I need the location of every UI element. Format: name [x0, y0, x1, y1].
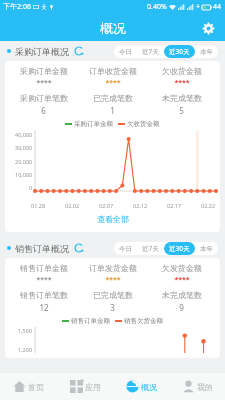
staticText: 近30天 — [169, 244, 190, 253]
staticText: 应用 — [85, 382, 101, 392]
staticText: 订单发货金额 — [89, 263, 137, 273]
button[interactable]: 近7天 — [137, 242, 164, 255]
staticText: 采购订单金额 — [20, 66, 68, 76]
staticText: 0 — [29, 184, 33, 191]
staticText: 我的 — [197, 382, 213, 392]
button[interactable]: 设置 — [198, 18, 218, 38]
staticText: 9 — [179, 302, 184, 313]
staticText: 今日 — [119, 48, 132, 56]
staticText: 1,500 — [18, 327, 33, 334]
staticText: 1,200 — [18, 346, 33, 353]
staticText: **** — [174, 275, 190, 285]
button[interactable]: 销售订单金额 — [5, 258, 220, 358]
staticText: 未完成笔数 — [162, 290, 202, 300]
staticText: 销售订单笔数 — [20, 290, 68, 300]
staticText: **** — [105, 275, 121, 285]
staticText: 6 — [41, 105, 46, 116]
staticText: 欠收货金额 — [162, 66, 202, 76]
staticText: **** — [174, 78, 190, 88]
staticText: 02.07 — [99, 202, 114, 209]
button[interactable]: 查看全部 — [5, 211, 220, 227]
staticText: 销售订单金额 — [20, 263, 68, 273]
staticText: 12 — [39, 302, 49, 313]
staticText: 本年 — [200, 48, 213, 56]
staticText: **** — [36, 78, 52, 88]
staticText: 本年 — [200, 245, 213, 253]
button[interactable]: 应用 — [57, 373, 113, 400]
staticText: 已完成笔数 — [93, 93, 133, 103]
staticText: 欠收货金额 — [127, 120, 160, 128]
staticText: 今日 — [119, 245, 132, 253]
staticText: 20,000 — [15, 158, 33, 165]
staticText: 5 — [179, 105, 184, 116]
staticText: 未完成笔数 — [162, 93, 202, 103]
button[interactable]: 今日 — [114, 45, 137, 58]
staticText: 订单收货金额 — [89, 66, 137, 76]
button[interactable]: 刷新 — [73, 242, 85, 254]
button[interactable]: 本年 — [195, 242, 218, 255]
button[interactable]: 今日 — [114, 242, 137, 255]
staticText: 首页 — [28, 382, 44, 392]
button[interactable]: 近30天 — [164, 242, 195, 255]
staticText: 销售订单概况 — [15, 243, 69, 254]
button[interactable]: 近7天 — [137, 45, 164, 58]
staticText: 44 — [213, 2, 222, 12]
staticText: 采购订单概况 — [15, 46, 69, 57]
staticText: 0.40% — [147, 2, 167, 12]
staticText: 02.02 — [65, 202, 80, 209]
staticText: 02.22 — [201, 202, 216, 209]
staticText: 已完成笔数 — [93, 290, 133, 300]
staticText: 1 — [110, 105, 115, 116]
button[interactable]: 概况 — [113, 373, 169, 400]
staticText: 下午2:06 — [3, 2, 31, 12]
staticText: 采购订单笔数 — [20, 93, 68, 103]
staticText: 采购订单金额 — [74, 120, 113, 128]
staticText: + — [196, 2, 201, 12]
button[interactable]: 采购订单金额 — [5, 61, 220, 232]
staticText: 01.28 — [31, 202, 46, 209]
button[interactable]: 刷新 — [73, 45, 85, 57]
staticText: 02.17 — [167, 202, 182, 209]
button[interactable]: 首页 — [0, 373, 57, 400]
button[interactable]: 本年 — [195, 45, 218, 58]
staticText: 查看全部 — [97, 214, 129, 224]
button[interactable]: 近30天 — [164, 45, 195, 58]
staticText: 02.12 — [133, 202, 148, 209]
staticText: 近30天 — [169, 47, 190, 56]
staticText: 销售欠货金额 — [124, 317, 163, 325]
staticText: 近7天 — [142, 47, 159, 56]
staticText: **** — [105, 78, 121, 88]
staticText: 3 — [110, 302, 115, 313]
staticText: 销售订单金额 — [71, 317, 110, 325]
staticText: 近7天 — [142, 244, 159, 253]
button[interactable]: 我的 — [169, 373, 225, 400]
staticText: **** — [36, 275, 52, 285]
staticText: 10,000 — [15, 171, 33, 178]
staticText: 欠发货金额 — [162, 263, 202, 273]
staticText: 概况 — [100, 20, 126, 36]
staticText: 30,000 — [15, 144, 33, 151]
staticText: 40,000 — [15, 131, 33, 138]
staticText: 概况 — [141, 382, 157, 392]
